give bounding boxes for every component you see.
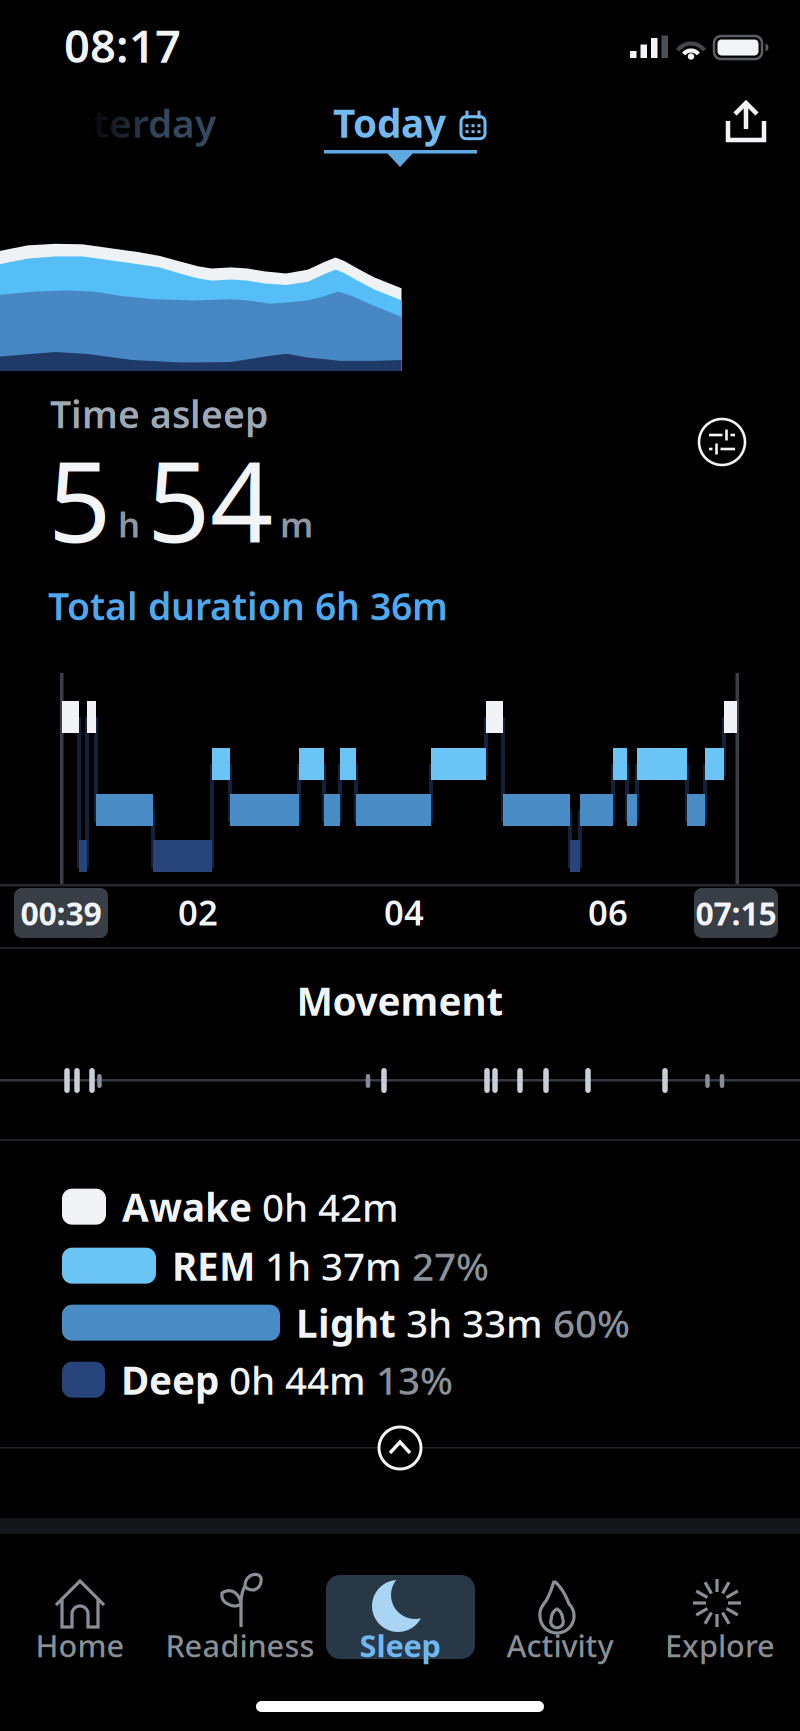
staticText: Deep bbox=[121, 1354, 219, 1405]
button[interactable]: Chart settings bbox=[696, 416, 748, 468]
staticText: 08:17 bbox=[64, 15, 181, 75]
button[interactable]: Sleep bbox=[320, 1560, 480, 1670]
staticText: Today bbox=[333, 97, 446, 148]
staticText: Awake bbox=[122, 1181, 252, 1232]
button[interactable]: Collapse details bbox=[377, 1425, 423, 1471]
staticText: Movement bbox=[296, 975, 503, 1026]
staticText: 07:15 bbox=[695, 892, 776, 934]
button[interactable]: Yesterday bbox=[30, 97, 216, 148]
staticText: 0h 44m bbox=[229, 1354, 366, 1405]
staticText: 0h 42m bbox=[262, 1181, 399, 1232]
button[interactable]: Today bbox=[333, 97, 486, 148]
staticText: m bbox=[280, 501, 313, 547]
staticText: 5 bbox=[48, 426, 111, 573]
staticText: 27% bbox=[412, 1240, 489, 1291]
staticText: Sleep bbox=[359, 1625, 440, 1666]
staticText: 1h 37m bbox=[265, 1240, 402, 1291]
staticText: 3h 33m bbox=[406, 1297, 543, 1348]
button[interactable]: Home bbox=[0, 1560, 160, 1670]
staticText: Activity bbox=[506, 1625, 613, 1666]
staticText: Readiness bbox=[165, 1625, 314, 1666]
staticText: Total duration 6h 36m bbox=[48, 581, 448, 631]
staticText: Explore bbox=[665, 1625, 775, 1666]
staticText: Time asleep bbox=[50, 389, 268, 439]
staticText: Home bbox=[35, 1625, 124, 1666]
staticText: 02 bbox=[178, 889, 218, 935]
staticText: 00:39 bbox=[20, 892, 101, 934]
staticText: Light bbox=[296, 1297, 396, 1348]
staticText: REM bbox=[172, 1240, 255, 1291]
button[interactable]: Explore bbox=[640, 1560, 800, 1670]
staticText: Yesterday bbox=[30, 97, 216, 148]
staticText: 04 bbox=[384, 889, 424, 935]
staticText: h bbox=[118, 501, 140, 547]
button[interactable]: Activity bbox=[480, 1560, 640, 1670]
staticText: 60% bbox=[553, 1297, 630, 1348]
button[interactable]: Share bbox=[726, 98, 770, 146]
staticText: 13% bbox=[376, 1354, 453, 1405]
staticText: 54 bbox=[147, 426, 273, 573]
button[interactable]: Readiness bbox=[160, 1560, 320, 1670]
staticText: 06 bbox=[588, 889, 628, 935]
